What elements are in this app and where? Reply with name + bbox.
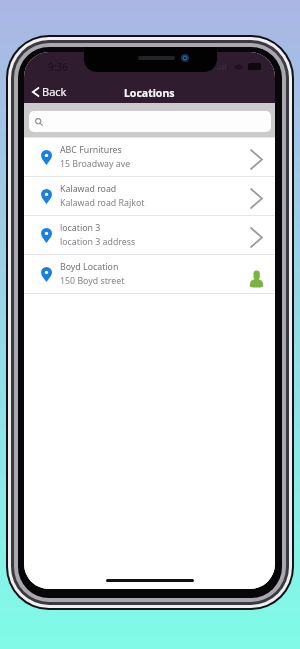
staticText: Kalawad road <box>60 183 117 195</box>
button[interactable]: Boyd Location <box>24 255 275 293</box>
staticText: Locations <box>124 86 175 100</box>
staticText: Back <box>42 84 67 99</box>
button[interactable]: Back <box>24 81 73 102</box>
button[interactable]: location 3 <box>24 216 275 254</box>
button[interactable] <box>29 111 271 132</box>
staticText: 150 Boyd street <box>60 275 125 287</box>
staticText: location 3 address <box>60 236 136 248</box>
button[interactable]: ABC Furnitures <box>24 138 275 176</box>
staticText: Kalawad road Rajkot <box>60 197 145 209</box>
staticText: 9:36 <box>48 60 68 74</box>
staticText: location 3 <box>60 222 101 234</box>
staticText: Boyd Location <box>60 261 119 273</box>
staticText: ABC Furnitures <box>60 144 122 156</box>
staticText: 15 Broadway ave <box>60 158 131 170</box>
button[interactable]: Kalawad road <box>24 177 275 215</box>
